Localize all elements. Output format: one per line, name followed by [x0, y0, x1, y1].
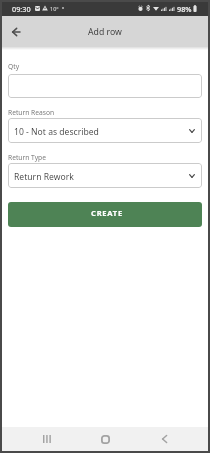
staticText: Return Reason — [8, 108, 55, 117]
button[interactable]: Back — [7, 23, 25, 41]
staticText: 10° — [50, 5, 59, 12]
staticText: Return Rework — [14, 171, 74, 183]
staticText: 98% — [177, 4, 192, 14]
staticText: CREATE — [91, 208, 123, 218]
staticText: Return Type — [8, 153, 46, 162]
button[interactable]: CREATE — [8, 202, 202, 227]
staticText: Add row — [88, 26, 122, 38]
staticText: Qty — [8, 62, 20, 71]
button[interactable]: Return Rework — [8, 163, 202, 188]
button[interactable]: Recents — [35, 427, 59, 451]
button[interactable] — [8, 74, 202, 98]
button[interactable]: 10 - Not as described — [8, 118, 202, 143]
button[interactable]: Back — [152, 427, 176, 451]
button[interactable]: Home — [93, 427, 117, 451]
staticText: 10 - Not as described — [14, 126, 99, 138]
staticText: 09:30 — [12, 4, 31, 14]
